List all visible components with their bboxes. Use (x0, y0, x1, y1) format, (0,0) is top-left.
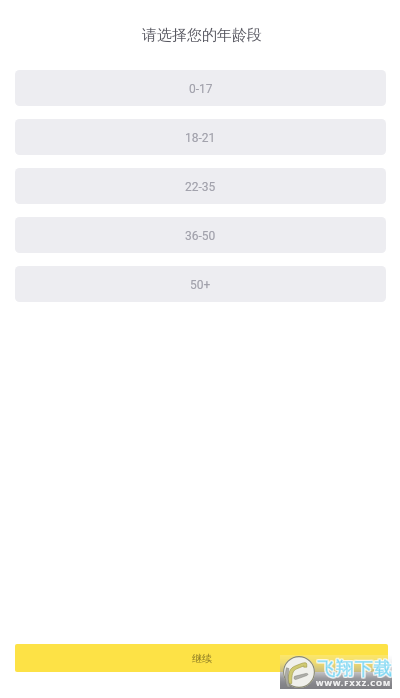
staticText: 飞翔下载 (316, 658, 392, 681)
staticText: 22-35 (185, 180, 216, 194)
staticText: 50+ (190, 278, 211, 292)
staticText: 飞翔下载 (317, 659, 393, 682)
staticText: 36-50 (185, 229, 216, 243)
staticText: 0-17 (189, 82, 213, 96)
staticText: 飞翔下载 (318, 657, 394, 680)
staticText: 飞翔下载 (318, 659, 394, 682)
staticText: 18-21 (185, 131, 216, 145)
staticText: 飞翔下载 (316, 657, 392, 680)
staticText: 继续 (192, 652, 212, 665)
button[interactable]: 22-35 (15, 168, 386, 204)
staticText: 飞翔下载 (317, 657, 393, 680)
staticText: 请选择您的年龄段 (2, 26, 400, 45)
button[interactable]: 0-17 (15, 70, 386, 106)
button[interactable]: 36-50 (15, 217, 386, 253)
staticText: 飞翔下载 (317, 658, 393, 681)
staticText: WWW.FXXZ.COM (316, 678, 392, 688)
button[interactable]: 继续 (15, 644, 388, 672)
staticText: 飞翔下载 (317, 658, 393, 681)
staticText: 飞翔下载 (316, 659, 392, 682)
button[interactable]: 18-21 (15, 119, 386, 155)
button[interactable]: 50+ (15, 266, 386, 302)
staticText: 飞翔下载 (318, 658, 394, 681)
